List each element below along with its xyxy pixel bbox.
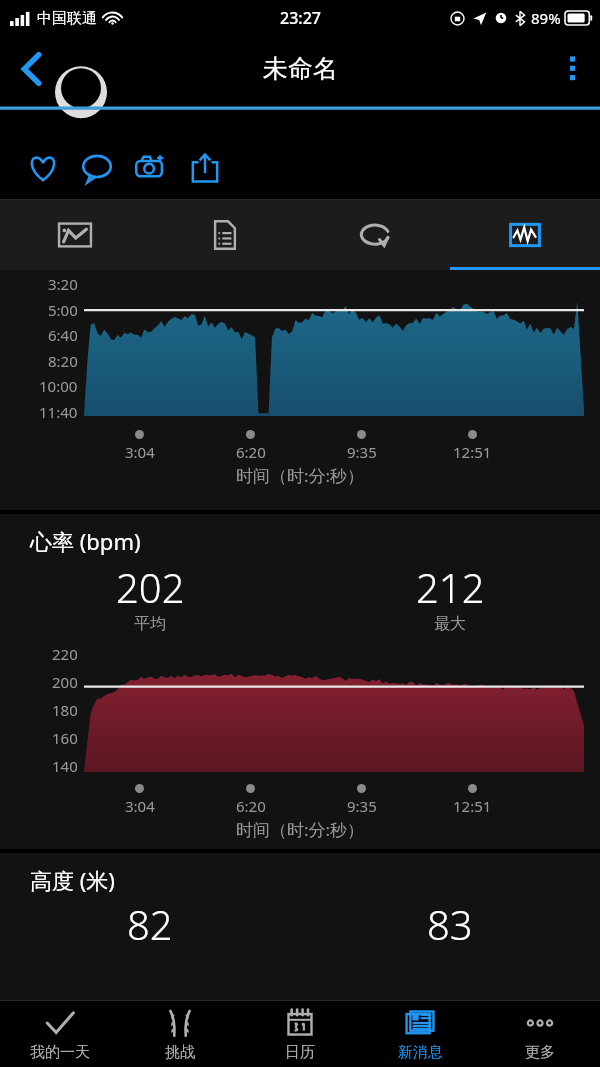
staticText: 3:04 bbox=[125, 442, 155, 462]
button[interactable]: Comment bbox=[70, 140, 124, 196]
staticText: 日历 bbox=[285, 1043, 315, 1062]
staticText: 新消息 bbox=[398, 1043, 443, 1062]
staticText: 11:40 bbox=[39, 402, 78, 422]
staticText: 3:04 bbox=[125, 796, 155, 816]
staticText: 8:20 bbox=[48, 351, 78, 371]
button[interactable]: Back bbox=[0, 36, 64, 101]
staticText: 挑战 bbox=[165, 1043, 195, 1062]
staticText: 3:20 bbox=[48, 274, 78, 294]
staticText: 12:51 bbox=[453, 442, 492, 462]
staticText: 高度 (米) bbox=[30, 865, 115, 895]
staticText: 180 bbox=[52, 700, 78, 720]
staticText: 我的一天 bbox=[30, 1043, 90, 1062]
staticText: 23:27 bbox=[280, 7, 321, 29]
button[interactable]: Charts bbox=[450, 200, 600, 270]
staticText: 140 bbox=[52, 756, 78, 776]
staticText: 10:00 bbox=[39, 376, 78, 396]
button[interactable]: More options bbox=[544, 36, 600, 101]
staticText: 心率 (bpm) bbox=[30, 526, 141, 556]
staticText: 212 bbox=[416, 560, 485, 614]
staticText: 83 bbox=[427, 897, 473, 951]
staticText: 更多 bbox=[525, 1043, 555, 1062]
staticText: 6:20 bbox=[236, 442, 266, 462]
button[interactable]: 新消息 bbox=[360, 1001, 480, 1067]
button[interactable]: 更多 bbox=[480, 1001, 600, 1067]
button[interactable]: 我的一天 bbox=[0, 1001, 120, 1067]
staticText: 9:35 bbox=[347, 796, 377, 816]
button[interactable]: 日历 bbox=[240, 1001, 360, 1067]
staticText: 6:20 bbox=[236, 796, 266, 816]
staticText: 202 bbox=[116, 560, 185, 614]
staticText: 平均 bbox=[134, 614, 166, 634]
staticText: 6:40 bbox=[48, 325, 78, 345]
staticText: 5:00 bbox=[48, 300, 78, 320]
staticText: 时间（时:分:秒） bbox=[0, 464, 600, 487]
staticText: 12:51 bbox=[453, 796, 492, 816]
button[interactable]: Map bbox=[0, 200, 150, 270]
staticText: 时间（时:分:秒） bbox=[0, 818, 600, 841]
button[interactable]: Details bbox=[150, 200, 300, 270]
button[interactable]: Laps bbox=[300, 200, 450, 270]
staticText: 89% bbox=[531, 8, 561, 28]
staticText: 9:35 bbox=[347, 442, 377, 462]
staticText: 中国联通 bbox=[37, 9, 97, 28]
button[interactable]: Add photo bbox=[124, 140, 178, 196]
button[interactable]: Like bbox=[16, 140, 70, 196]
button[interactable]: Share bbox=[178, 140, 232, 196]
staticText: 最大 bbox=[434, 614, 466, 634]
button[interactable]: 挑战 bbox=[120, 1001, 240, 1067]
staticText: 200 bbox=[52, 672, 78, 692]
staticText: 未命名 bbox=[263, 53, 338, 84]
staticText: 82 bbox=[127, 897, 173, 951]
staticText: 160 bbox=[52, 728, 78, 748]
staticText: 220 bbox=[52, 644, 78, 664]
